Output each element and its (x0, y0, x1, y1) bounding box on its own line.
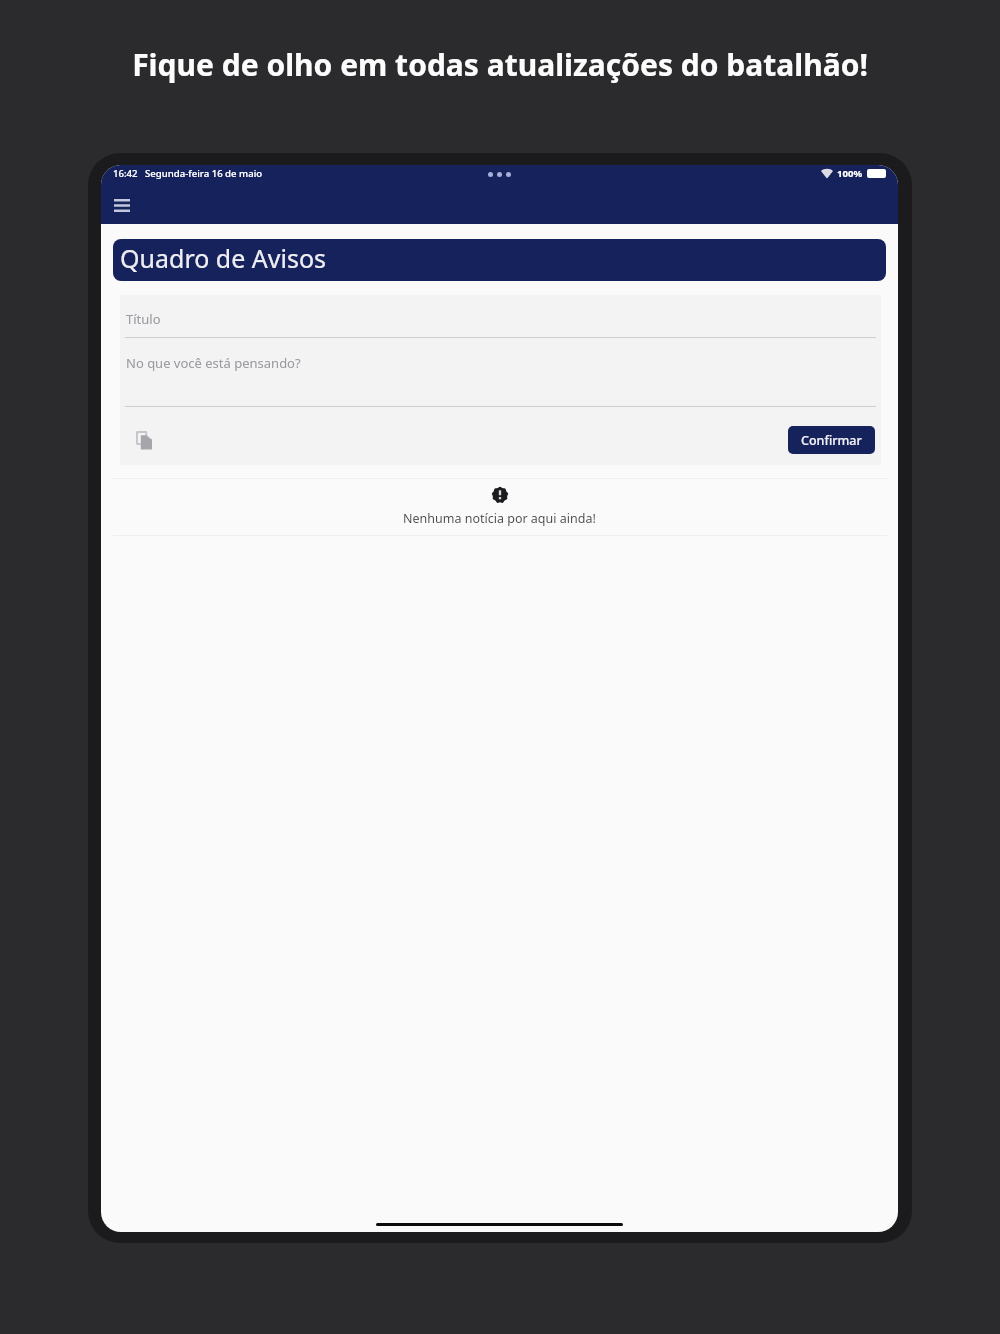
button[interactable]: Título (120, 295, 881, 337)
staticText: Fique de olho em todas atualizações do b… (132, 44, 868, 85)
staticText: Confirmar (801, 432, 862, 449)
staticText: No que você está pensando? (126, 354, 301, 372)
button[interactable]: No que você está pensando? (120, 338, 881, 406)
button[interactable]: Confirmar (788, 426, 875, 454)
staticText: Quadro de Avisos (120, 241, 327, 275)
staticText: 16:42 (113, 167, 138, 180)
button[interactable]: Anexar arquivo (130, 426, 158, 454)
staticText: Nenhuma notícia por aqui ainda! (403, 510, 596, 527)
staticText: Segunda-feira 16 de maio (145, 167, 263, 180)
staticText: 100% (837, 167, 863, 180)
button[interactable]: Quadro de Avisos (113, 239, 886, 281)
button[interactable]: Menu (104, 187, 140, 223)
staticText: Título (126, 310, 161, 328)
